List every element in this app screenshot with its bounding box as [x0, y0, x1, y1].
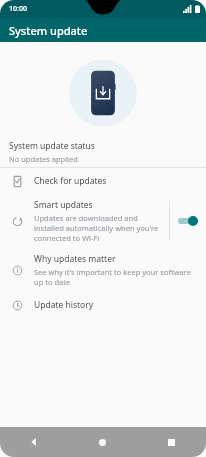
staticText: System update status — [9, 140, 95, 152]
staticText: System update — [9, 23, 88, 38]
button[interactable]: Why updates matter — [0, 248, 206, 292]
button[interactable]: Smart updates — [0, 194, 206, 248]
staticText: Why updates matter — [34, 253, 116, 265]
staticText: Smart updates — [34, 199, 93, 211]
staticText: Updates are downloaded and installed aut… — [34, 213, 165, 243]
staticText: Check for updates — [34, 175, 107, 187]
button[interactable]: Home — [68, 427, 137, 457]
button[interactable]: Smart updates toggle — [170, 202, 206, 240]
staticText: Update history — [34, 299, 94, 311]
button[interactable]: Check for updates — [0, 168, 206, 194]
button[interactable]: Recents — [137, 427, 206, 457]
staticText: See why it's important to keep your soft… — [34, 267, 197, 287]
button[interactable]: Update history — [0, 292, 206, 318]
staticText: 10:00 — [9, 4, 27, 14]
button[interactable]: Back — [0, 427, 68, 457]
staticText: No updates applied — [9, 154, 78, 164]
